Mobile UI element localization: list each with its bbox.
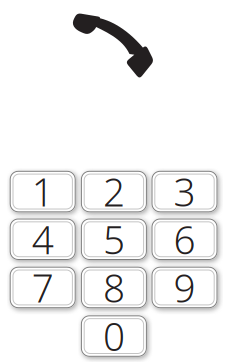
button[interactable]: 1: [10, 171, 76, 212]
staticText: 7: [32, 262, 54, 313]
staticText: 5: [103, 214, 125, 265]
button[interactable]: 3: [151, 171, 217, 212]
staticText: 1: [32, 166, 54, 217]
staticText: 3: [173, 166, 195, 217]
button[interactable]: 2: [81, 171, 147, 212]
staticText: 4: [32, 214, 54, 265]
staticText: 8: [103, 262, 125, 313]
button[interactable]: 4: [10, 218, 76, 260]
button[interactable]: 6: [151, 218, 217, 260]
button[interactable]: 9: [151, 267, 217, 308]
staticText: 2: [103, 166, 125, 217]
button[interactable]: 8: [81, 267, 147, 308]
button[interactable]: 7: [10, 267, 76, 308]
button[interactable]: 0: [81, 315, 147, 357]
staticText: 6: [173, 214, 195, 265]
staticText: 9: [173, 262, 195, 313]
staticText: 0: [103, 310, 125, 362]
button[interactable]: 5: [81, 218, 147, 260]
